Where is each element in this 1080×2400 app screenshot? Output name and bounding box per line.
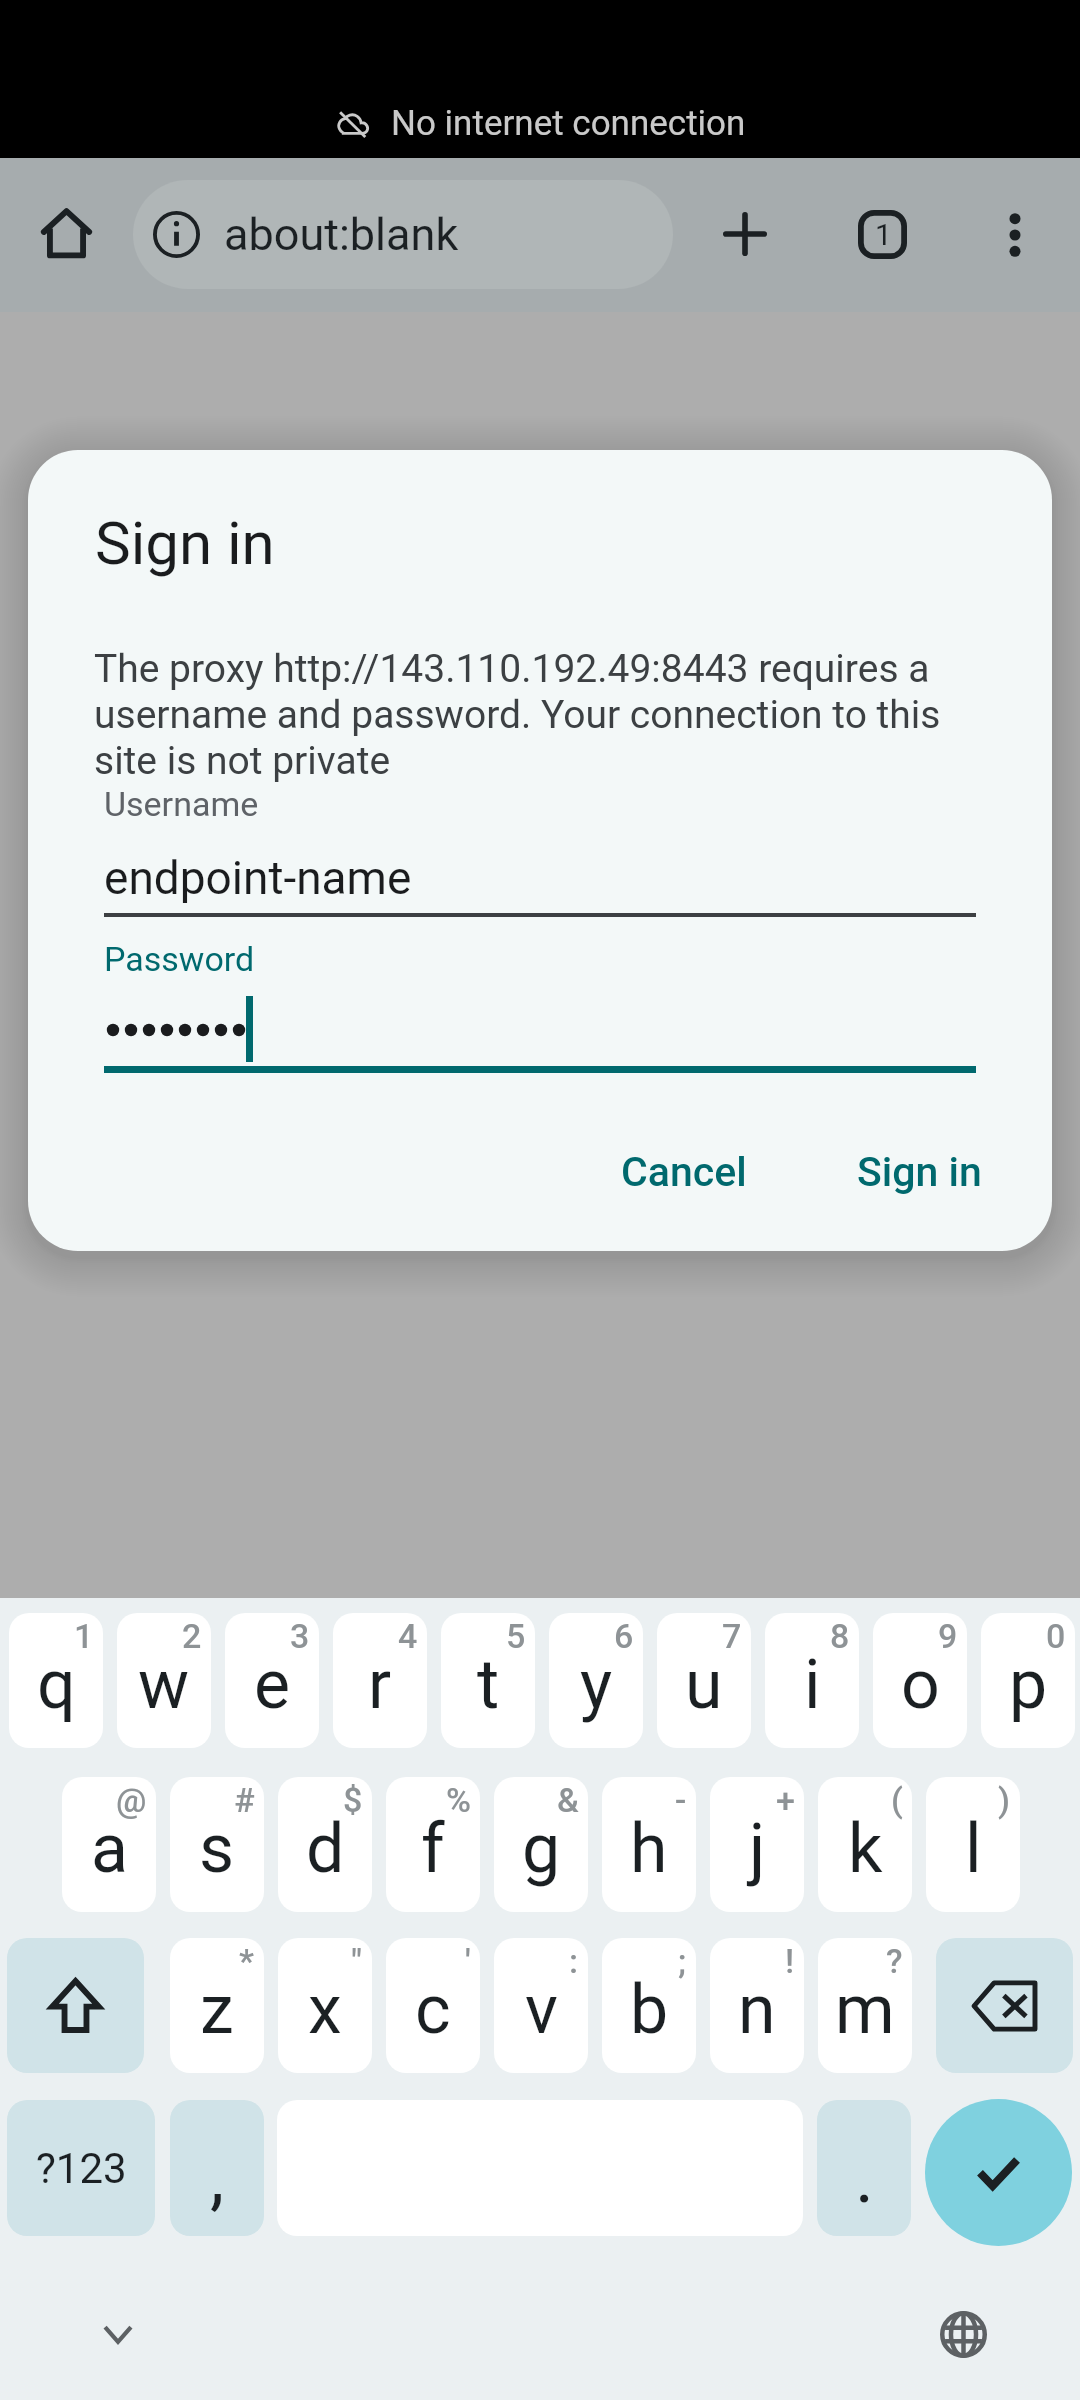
staticText: Sign in (95, 508, 275, 578)
staticText: 9 (938, 1616, 958, 1656)
button[interactable]: - (602, 1777, 696, 1912)
button[interactable]: Home (18, 185, 114, 281)
button[interactable]: 1 (9, 1613, 103, 1748)
staticText: h (630, 1809, 668, 1889)
button[interactable]: ? (818, 1938, 912, 2073)
button[interactable]: Sign in (831, 1128, 1007, 1216)
staticText: , (210, 2135, 225, 2219)
button[interactable]: 3 (225, 1613, 319, 1748)
staticText: + (776, 1780, 795, 1820)
button[interactable]: 2 (117, 1613, 211, 1748)
staticText: Username (104, 784, 259, 824)
staticText: 8 (830, 1616, 850, 1656)
button[interactable]: . (817, 2100, 911, 2236)
staticText: 0 (1046, 1616, 1066, 1656)
button[interactable]: " (278, 1938, 372, 2073)
staticText: z (200, 1970, 234, 2050)
staticText: ?123 (36, 2144, 127, 2193)
button[interactable]: ( (818, 1777, 912, 1912)
staticText: $ (343, 1780, 363, 1820)
staticText: i (804, 1645, 821, 1725)
button[interactable]: Change language (923, 2294, 1003, 2374)
staticText: w (138, 1645, 190, 1725)
staticText: u (685, 1645, 723, 1725)
staticText: e (254, 1645, 291, 1725)
staticText: ( (891, 1780, 903, 1820)
button[interactable]: , (170, 2100, 264, 2236)
staticText: No internet connection (391, 103, 746, 144)
button[interactable]: ; (602, 1938, 696, 2073)
staticText: % (446, 1780, 471, 1820)
button[interactable]: 4 (333, 1613, 427, 1748)
staticText: endpoint-name (104, 851, 412, 905)
staticText: about:blank (224, 208, 459, 261)
button[interactable]: Enter (925, 2099, 1072, 2246)
button[interactable]: Hide keyboard (78, 2294, 158, 2374)
button[interactable]: $ (278, 1777, 372, 1912)
staticText: ! (785, 1941, 795, 1981)
staticText: j (749, 1809, 766, 1889)
staticText: n (738, 1970, 776, 2050)
button[interactable]: Cancel (594, 1128, 774, 1216)
button[interactable]: New tab (697, 186, 793, 282)
staticText: p (1009, 1645, 1048, 1725)
staticText: a (91, 1809, 128, 1889)
staticText: ' (465, 1941, 471, 1981)
button[interactable]: 7 (657, 1613, 751, 1748)
button[interactable]: Search or type URL (133, 180, 673, 289)
staticText: 1 (875, 217, 892, 252)
staticText: k (848, 1809, 883, 1889)
button[interactable]: 0 (981, 1613, 1075, 1748)
button[interactable]: # (170, 1777, 264, 1912)
staticText: Password (104, 939, 255, 979)
button[interactable]: Shift (7, 1938, 144, 2073)
staticText: o (901, 1645, 940, 1725)
staticText: s (199, 1809, 235, 1889)
button[interactable]: ) (926, 1777, 1020, 1912)
button[interactable]: + (710, 1777, 804, 1912)
staticText: Sign in (857, 1148, 982, 1196)
staticText: " (351, 1941, 363, 1981)
staticText: . (855, 2135, 874, 2219)
staticText: y (580, 1645, 613, 1725)
button[interactable]: : (494, 1938, 588, 2073)
button[interactable]: 9 (873, 1613, 967, 1748)
button[interactable]: % (386, 1777, 480, 1912)
staticText: 4 (398, 1616, 418, 1656)
button[interactable]: ! (710, 1938, 804, 2073)
staticText: r (368, 1645, 392, 1725)
button[interactable]: Backspace (936, 1938, 1073, 2073)
staticText: v (525, 1970, 558, 2050)
button[interactable]: * (170, 1938, 264, 2073)
button[interactable]: 6 (549, 1613, 643, 1748)
staticText: t (477, 1645, 500, 1725)
button[interactable]: More options (967, 187, 1063, 283)
staticText: : (569, 1941, 579, 1981)
staticText: l (965, 1809, 982, 1889)
button[interactable]: 5 (441, 1613, 535, 1748)
staticText: b (630, 1970, 669, 2050)
staticText: # (234, 1780, 255, 1820)
staticText: d (306, 1809, 345, 1889)
button[interactable]: & (494, 1777, 588, 1912)
button[interactable]: Switch tabs (834, 186, 930, 282)
staticText: The proxy http://143.110.192.49:8443 req… (94, 646, 978, 784)
button[interactable]: @ (62, 1777, 156, 1912)
button[interactable]: ?123 (7, 2100, 155, 2236)
staticText: x (308, 1970, 342, 2050)
staticText: 6 (614, 1616, 634, 1656)
staticText: @ (116, 1780, 147, 1820)
staticText: * (239, 1941, 255, 1981)
staticText: 5 (506, 1616, 526, 1656)
button[interactable]: 8 (765, 1613, 859, 1748)
staticText: ) (998, 1780, 1011, 1820)
staticText: 7 (722, 1616, 742, 1656)
staticText: ? (886, 1941, 903, 1981)
staticText: 2 (182, 1616, 202, 1656)
button[interactable]: ' (386, 1938, 480, 2073)
staticText: f (421, 1809, 445, 1889)
staticText: m (835, 1970, 895, 2050)
staticText: Cancel (621, 1148, 747, 1196)
staticText: c (415, 1970, 451, 2050)
